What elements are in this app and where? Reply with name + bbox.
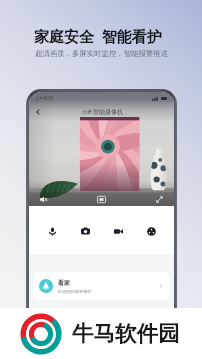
staticText: 超清画质，多屏实时监控，智能报警推送 xyxy=(35,49,169,58)
button[interactable]: Snapshot xyxy=(97,195,106,204)
button[interactable]: Microphone xyxy=(42,221,62,241)
button[interactable]: Record video xyxy=(108,221,128,241)
staticText: 家庭安全 智能看护 xyxy=(34,26,162,46)
staticText: 上午8:36 xyxy=(35,95,54,101)
staticText: 机看到的重要事件 xyxy=(58,289,92,294)
button[interactable]: Take photo xyxy=(75,221,95,241)
button[interactable]: Back xyxy=(32,106,44,118)
button[interactable]: More xyxy=(141,221,161,241)
button[interactable]: Mute xyxy=(39,195,48,204)
button[interactable]: Fullscreen xyxy=(155,195,164,204)
staticText: 看家 xyxy=(58,279,70,287)
button[interactable]: 看家 xyxy=(33,272,170,300)
staticText: 牛马软件园 xyxy=(72,320,180,347)
staticText: 小米智能摄像机 xyxy=(81,108,123,116)
